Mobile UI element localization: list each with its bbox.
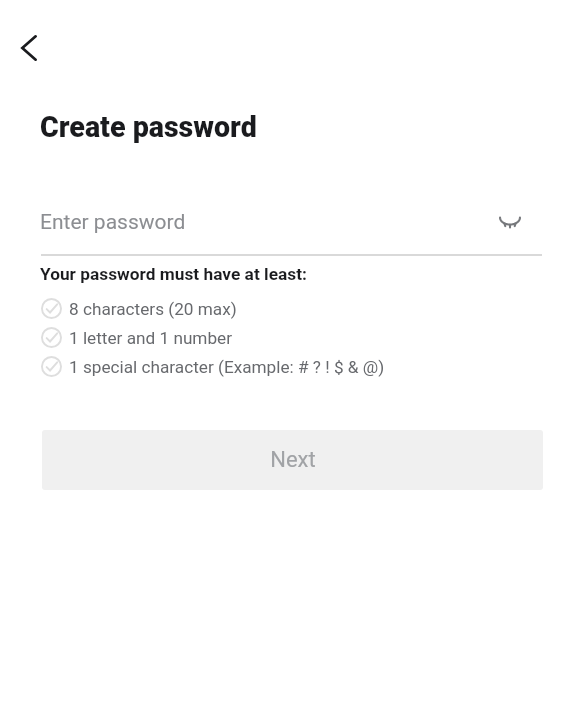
staticText: Next: [270, 447, 316, 473]
staticText: Create password: [40, 110, 257, 144]
button[interactable]: Next: [42, 430, 543, 490]
staticText: Your password must have at least:: [40, 264, 307, 284]
button[interactable]: Show password: [488, 201, 532, 245]
staticText: 1 letter and 1 number: [69, 328, 233, 348]
staticText: Enter password: [40, 210, 186, 235]
staticText: 8 characters (20 max): [69, 299, 237, 319]
staticText: 1 special character (Example: # ? ! $ & …: [69, 357, 385, 377]
button[interactable]: Back: [5, 24, 53, 72]
